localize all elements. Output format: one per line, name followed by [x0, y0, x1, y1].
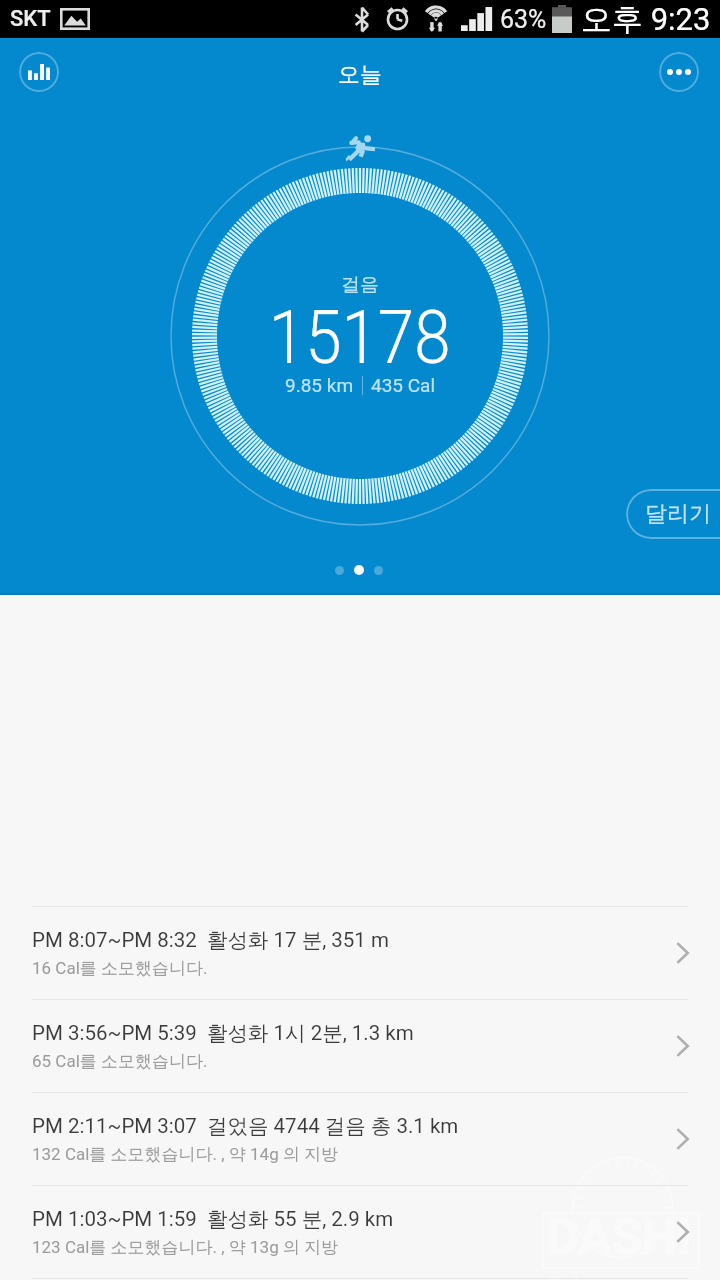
staticText: 65 Cal를 소모했습니다.: [32, 1051, 208, 1072]
staticText: 132 Cal를 소모했습니다. , 약 14g 의 지방: [32, 1144, 339, 1165]
staticText: 15178: [269, 294, 451, 381]
staticText: PM 1:03~PM 1:59 활성화 55 분, 2.9 km: [32, 1206, 394, 1232]
staticText: 63%: [500, 5, 547, 34]
staticText: 오늘: [338, 61, 382, 89]
staticText: 123 Cal를 소모했습니다. , 약 13g 의 지방: [32, 1237, 339, 1258]
staticText: 오후 9:23: [581, 0, 711, 38]
staticText: SKT: [10, 6, 51, 32]
button[interactable]: More options: [659, 52, 699, 92]
staticText: 435 Cal: [371, 374, 436, 396]
button[interactable]: 달리기: [626, 489, 720, 539]
staticText: 달리기: [645, 500, 711, 528]
button[interactable]: PM 1:03~PM 1:59 활성화 55 분, 2.9 km: [0, 1186, 720, 1278]
staticText: 16 Cal를 소모했습니다.: [32, 958, 208, 979]
staticText: PM 8:07~PM 8:32 활성화 17 분, 351 m: [32, 927, 389, 953]
staticText: PM 3:56~PM 5:39 활성화 1시 2분, 1.3 km: [32, 1020, 414, 1046]
button[interactable]: Trends: [19, 52, 59, 92]
staticText: DASHIN: [546, 1208, 702, 1280]
staticText: 걸음: [341, 273, 379, 297]
button[interactable]: PM 2:11~PM 3:07 걸었음 4744 걸음 총 3.1 km: [0, 1093, 720, 1185]
button[interactable]: PM 8:07~PM 8:32 활성화 17 분, 351 m: [0, 907, 720, 999]
staticText: PM 2:11~PM 3:07 걸었음 4744 걸음 총 3.1 km: [32, 1113, 459, 1139]
button[interactable]: PM 3:56~PM 5:39 활성화 1시 2분, 1.3 km: [0, 1000, 720, 1092]
staticText: 9.85 km: [285, 374, 354, 396]
